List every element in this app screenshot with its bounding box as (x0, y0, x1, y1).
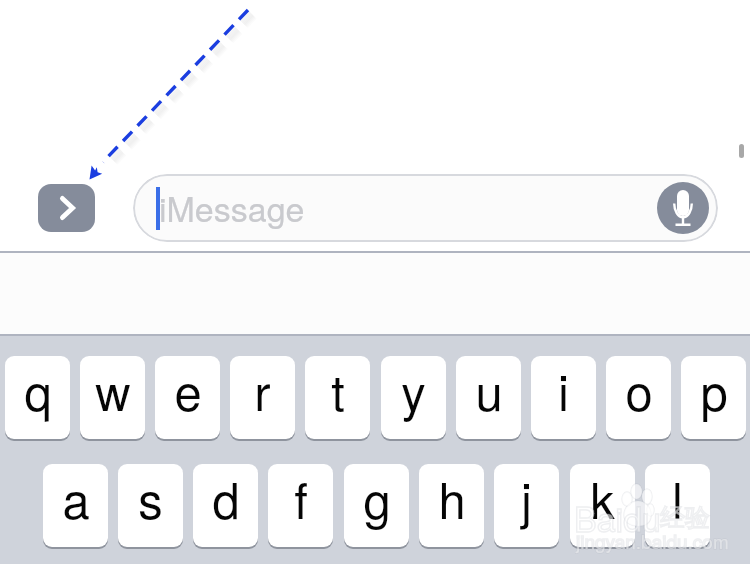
staticText: a (62, 463, 90, 533)
staticText: jingyan.baidu.com (576, 527, 729, 554)
button[interactable]: j (494, 464, 559, 549)
button[interactable]: a (43, 464, 108, 549)
staticText: p (700, 355, 728, 425)
staticText: 经验 (660, 502, 710, 533)
button[interactable]: iMessage (133, 174, 718, 242)
button[interactable]: f (268, 464, 333, 549)
button[interactable]: e (155, 356, 220, 441)
staticText: Baidu (574, 493, 661, 542)
staticText: g (363, 463, 391, 533)
staticText: q (24, 355, 52, 425)
staticText: j (521, 463, 532, 533)
button[interactable]: i (531, 356, 596, 441)
button[interactable]: o (606, 356, 671, 441)
button[interactable]: p (681, 356, 746, 441)
staticText: h (438, 463, 466, 533)
staticText: Baidu (574, 493, 661, 542)
staticText: k (590, 463, 615, 533)
staticText: d (212, 463, 240, 533)
button[interactable]: t (305, 356, 370, 441)
button[interactable]: w (80, 356, 145, 441)
staticText: w (95, 355, 131, 425)
staticText: s (138, 463, 163, 533)
staticText: 经验 (660, 502, 710, 533)
staticText: f (294, 463, 308, 533)
staticText: y (401, 355, 426, 425)
button[interactable]: u (456, 356, 521, 441)
button[interactable]: h (419, 464, 484, 549)
button[interactable]: g (344, 464, 409, 549)
button[interactable]: y (381, 356, 446, 441)
staticText: u (475, 355, 503, 425)
staticText: iMessage (159, 183, 305, 232)
staticText: e (174, 355, 202, 425)
button[interactable]: s (118, 464, 183, 549)
button[interactable]: Dictate (657, 182, 709, 234)
staticText: l (672, 463, 683, 533)
staticText: t (331, 355, 345, 425)
staticText: r (254, 355, 271, 425)
button[interactable]: r (230, 356, 295, 441)
staticText: jingyan.baidu.com (576, 527, 729, 554)
button[interactable]: d (193, 464, 258, 549)
staticText: i (558, 355, 569, 425)
button[interactable]: k (570, 464, 635, 549)
staticText: o (625, 355, 653, 425)
button[interactable]: q (5, 356, 70, 441)
button[interactable]: l (645, 464, 710, 549)
button[interactable]: Show more options (38, 184, 95, 232)
